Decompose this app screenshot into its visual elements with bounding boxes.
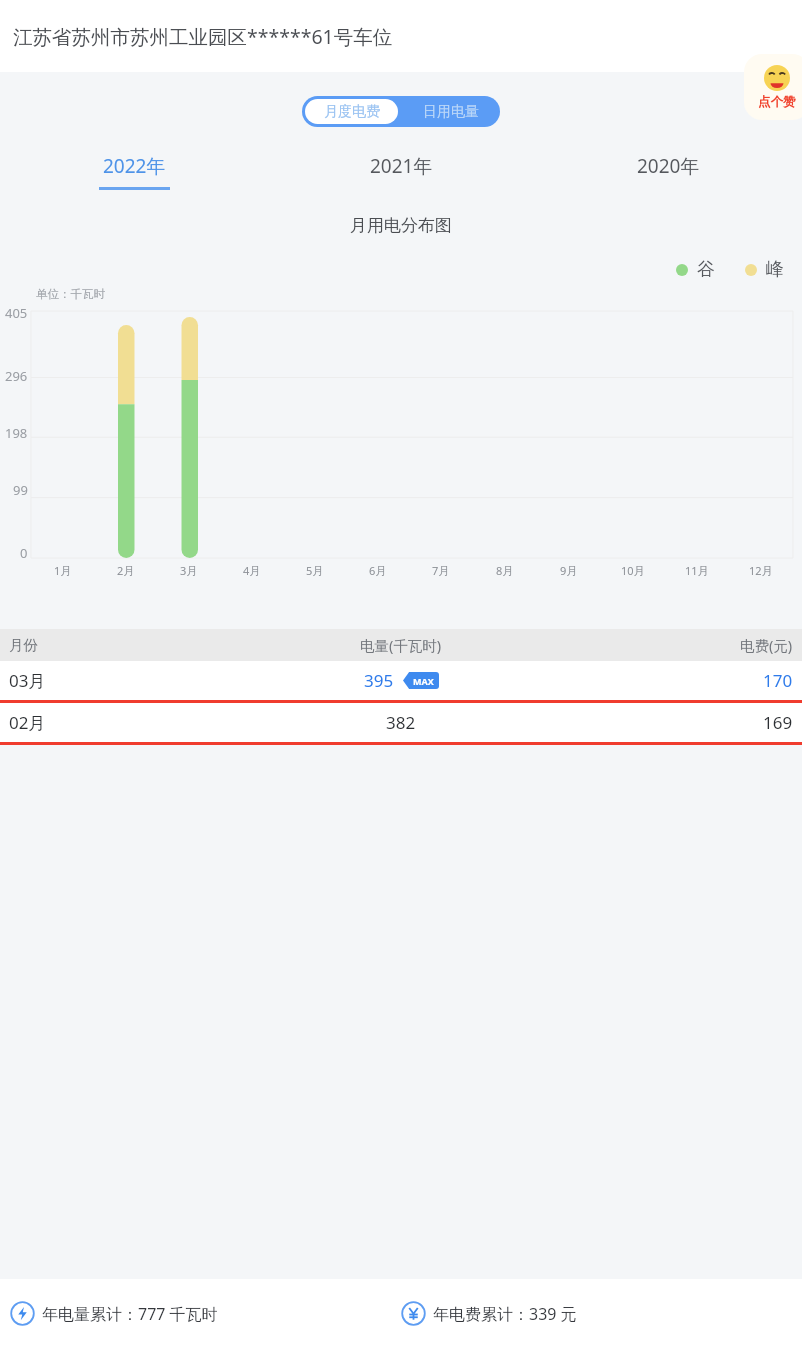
staticText: 6月 (369, 563, 387, 578)
staticText: 169 (763, 711, 793, 734)
staticText: 5月 (306, 563, 324, 578)
staticText: 2020年 (637, 153, 700, 179)
button[interactable]: 日用电量 (401, 96, 500, 127)
staticText: 江苏省苏州市苏州工业园区******61号车位 (13, 23, 393, 50)
staticText: 单位：千瓦时 (36, 287, 105, 301)
staticText: 月份 (9, 636, 38, 654)
staticText: 10月 (621, 563, 645, 578)
staticText: 9月 (560, 563, 578, 578)
button[interactable]: 谷 (676, 258, 715, 281)
staticText: 电量(千瓦时) (360, 635, 442, 655)
staticText: 395 (364, 669, 394, 692)
staticText: 296 (5, 367, 28, 385)
button[interactable]: 年电量累计：777 千瓦时 (10, 1301, 401, 1326)
staticText: 7月 (432, 563, 450, 578)
staticText: 0 (20, 544, 28, 562)
staticText: 405 (5, 304, 28, 322)
button[interactable]: 2022年 (0, 153, 268, 195)
button[interactable]: 峰 (745, 258, 784, 281)
staticText: 年电费累计：339 元 (433, 1303, 577, 1325)
staticText: MAX (413, 675, 434, 687)
staticText: 198 (5, 424, 28, 442)
staticText: 99 (13, 481, 28, 499)
staticText: 12月 (749, 563, 773, 578)
staticText: 谷 (697, 258, 715, 281)
staticText: 3月 (180, 563, 198, 578)
staticText: 382 (386, 711, 416, 734)
staticText: 4月 (243, 563, 261, 578)
staticText: 02月 (9, 711, 46, 734)
staticText: 03月 (9, 669, 46, 692)
staticText: 8月 (496, 563, 514, 578)
staticText: 170 (763, 669, 793, 692)
button[interactable]: 03月 (0, 661, 802, 700)
button[interactable]: 江苏省苏州市苏州工业园区******61号车位 (13, 23, 393, 50)
staticText: 峰 (766, 258, 784, 281)
staticText: 月度电费 (324, 103, 380, 121)
staticText: 年电量累计：777 千瓦时 (42, 1303, 218, 1325)
staticText: 2月 (117, 563, 135, 578)
button[interactable]: 点个赞 (744, 54, 802, 120)
staticText: 2021年 (370, 153, 433, 179)
staticText: 2022年 (103, 153, 166, 179)
button[interactable]: 2020年 (535, 153, 802, 195)
button[interactable]: 02月 (0, 703, 802, 742)
staticText: 电费(元) (740, 635, 793, 655)
button[interactable]: 月度电费 (305, 99, 398, 124)
staticText: 11月 (685, 563, 709, 578)
staticText: 日用电量 (423, 103, 479, 121)
staticText: 月用电分布图 (350, 215, 452, 236)
button[interactable]: 年电费累计：339 元 (401, 1301, 802, 1326)
button[interactable]: 2021年 (268, 153, 535, 195)
staticText: 点个赞 (758, 94, 796, 110)
staticText: 1月 (54, 563, 72, 578)
